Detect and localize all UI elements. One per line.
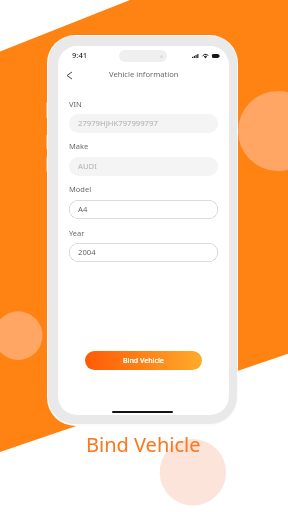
- staticText: AUDI: [78, 161, 97, 171]
- staticText: Model: [69, 184, 92, 194]
- button[interactable]: 27979HJHK797999797: [69, 114, 218, 133]
- staticText: 27979HJHK797999797: [78, 118, 158, 128]
- staticText: 9:41: [72, 50, 88, 60]
- staticText: Bind Vehicle: [86, 431, 201, 458]
- staticText: 2004: [78, 247, 96, 257]
- button[interactable]: Bind Vehicle: [85, 351, 202, 370]
- button[interactable]: 2004: [69, 243, 218, 262]
- staticText: Year: [69, 228, 85, 238]
- staticText: Vehicle information: [109, 69, 179, 79]
- button[interactable]: A4: [69, 200, 218, 219]
- button[interactable]: Back: [62, 67, 76, 83]
- staticText: Make: [69, 141, 89, 151]
- staticText: Bind Vehicle: [123, 356, 164, 366]
- staticText: VIN: [69, 99, 82, 109]
- button[interactable]: AUDI: [69, 157, 218, 176]
- staticText: A4: [78, 204, 88, 214]
